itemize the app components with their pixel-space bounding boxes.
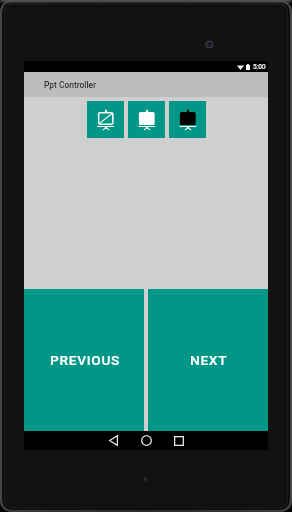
button[interactable]: NEXT (148, 289, 268, 431)
staticText: 5:00 (253, 63, 266, 71)
staticText: Ppt Controller (44, 80, 97, 90)
button[interactable]: White slide (128, 101, 165, 138)
button[interactable]: Back (97, 431, 129, 450)
button[interactable]: Present (87, 101, 124, 138)
button[interactable]: Home (130, 431, 162, 450)
staticText: PREVIOUS (50, 352, 121, 368)
button[interactable]: Black slide (169, 101, 206, 138)
staticText: NEXT (190, 352, 228, 368)
button[interactable]: Recent apps (163, 431, 195, 450)
button[interactable]: PREVIOUS (24, 289, 144, 431)
